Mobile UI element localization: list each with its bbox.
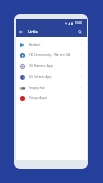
button[interactable]: Yango Apps	[16, 92, 87, 103]
button[interactable]: FB Community - We are GB	[16, 49, 87, 60]
staticText: 10:00	[75, 21, 82, 25]
button[interactable]: GS Setters App	[16, 71, 87, 82]
staticText: Snapychat	[29, 86, 80, 90]
button[interactable]: Back	[17, 28, 25, 36]
staticText: FB Community - We are GB	[29, 53, 80, 57]
staticText: Belabel	[29, 43, 80, 47]
staticText: GS Nations App	[29, 64, 80, 68]
staticText: Yango Apps	[29, 96, 80, 100]
button[interactable]: Belabel	[16, 39, 87, 50]
staticText: GS Setters App	[29, 75, 80, 79]
staticText: Links	[28, 29, 38, 34]
button[interactable]: GS Nations App	[16, 60, 87, 71]
button[interactable]: Search	[76, 28, 84, 36]
button[interactable]: Snapychat	[16, 82, 87, 93]
